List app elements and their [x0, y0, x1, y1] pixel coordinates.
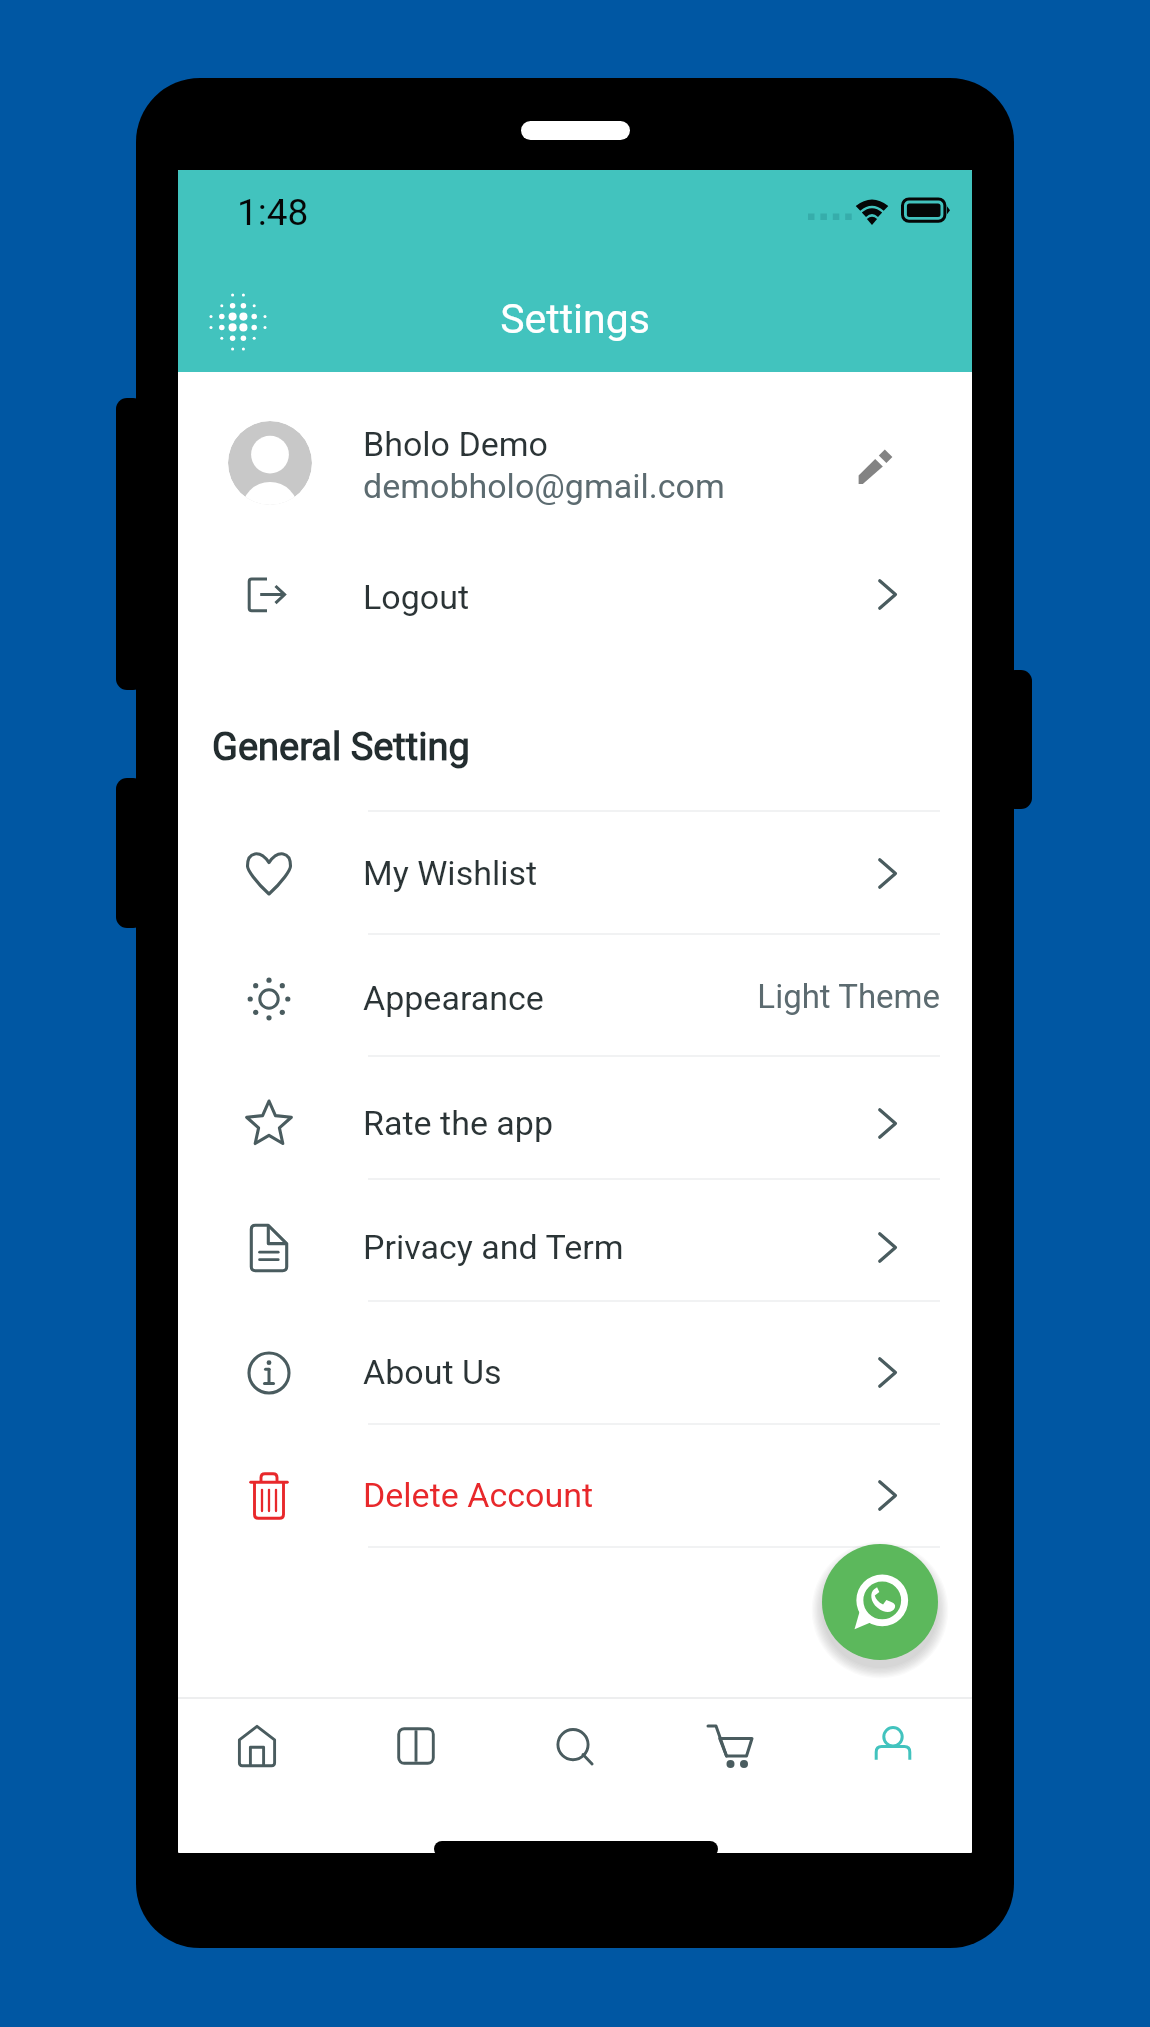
button[interactable] — [178, 400, 972, 520]
staticText: General Setting — [212, 725, 470, 770]
button[interactable] — [178, 1302, 972, 1424]
staticText: 1:48 — [237, 191, 309, 234]
staticText: Rate the app — [363, 1103, 554, 1143]
button[interactable] — [178, 935, 972, 1057]
button[interactable]: Chat on WhatsApp — [822, 1544, 938, 1660]
button[interactable]: Menu — [194, 278, 282, 366]
button[interactable]: Profile — [813, 1699, 972, 1793]
staticText: Settings — [178, 295, 972, 343]
staticText: demobholo@gmail.com — [363, 466, 725, 506]
staticText: About Us — [363, 1352, 502, 1392]
button[interactable]: Home — [178, 1699, 336, 1793]
button[interactable] — [178, 1425, 972, 1547]
staticText: Privacy and Term — [363, 1227, 624, 1267]
staticText: Bholo Demo — [363, 424, 548, 464]
button[interactable] — [178, 1180, 972, 1302]
button[interactable] — [178, 1057, 972, 1179]
button[interactable] — [178, 812, 972, 934]
button[interactable]: Categories — [336, 1699, 495, 1793]
staticText: Logout — [363, 577, 470, 617]
button[interactable]: Cart — [654, 1699, 813, 1793]
staticText: My Wishlist — [363, 853, 538, 893]
button[interactable]: Search — [495, 1699, 654, 1793]
button[interactable] — [178, 538, 972, 654]
staticText: Delete Account — [363, 1475, 594, 1515]
button[interactable]: Edit profile — [833, 424, 913, 504]
staticText: Appearance — [363, 978, 544, 1018]
staticText: Light Theme — [540, 977, 940, 1016]
